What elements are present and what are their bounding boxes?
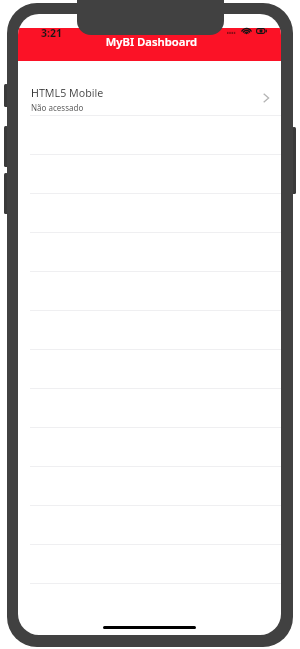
other: Open [263, 93, 270, 103]
staticText: HTML5 Mobile [31, 86, 104, 101]
button[interactable]: HTML5 Mobile [18, 61, 281, 116]
staticText: MyBI Dashboard [20, 34, 281, 49]
staticText: 3:21 [41, 26, 62, 40]
staticText: Não acessado [31, 102, 84, 113]
